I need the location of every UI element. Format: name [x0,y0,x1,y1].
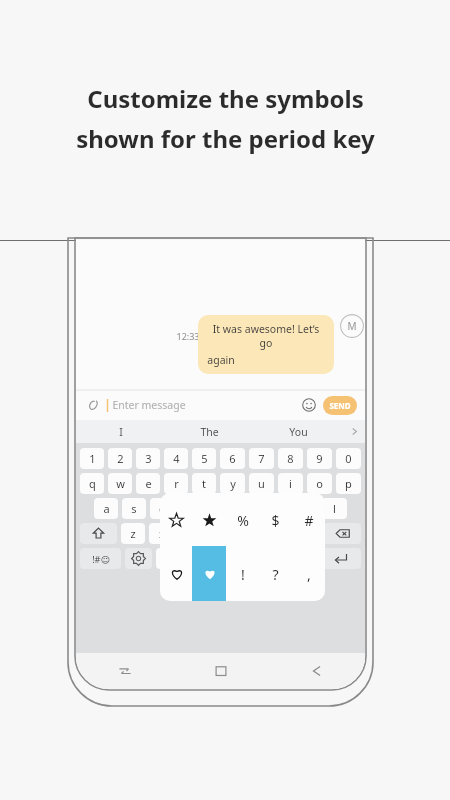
button[interactable]: You [254,420,343,443]
button[interactable]: p [336,473,361,494]
button[interactable] [193,547,226,601]
button[interactable]: Shift [80,523,117,544]
button[interactable]: m [294,523,319,544]
button[interactable]: 7 [249,448,274,469]
button[interactable]: Home [173,653,269,689]
staticText: The [200,425,219,439]
button[interactable]: s [122,498,146,519]
button[interactable]: r [164,473,188,494]
button[interactable]: 4 [164,448,188,469]
button[interactable]: ! [226,547,259,601]
button[interactable]: Recents [76,653,173,689]
button[interactable]: e [136,473,160,494]
button[interactable]: 9 [307,448,332,469]
staticText: 4 [173,451,180,466]
button[interactable]: 0 [336,448,361,469]
button[interactable]: b [236,523,261,544]
button[interactable]: a [94,498,118,519]
staticText: 12:33 [176,330,200,342]
staticText: 5 [201,451,208,466]
button[interactable]: c [178,523,203,544]
button[interactable]: i [278,473,303,494]
button[interactable]: Backspace [323,523,361,544]
button[interactable]: Back [269,653,365,689]
staticText: Enter message [112,398,186,412]
button[interactable]: x [149,523,174,544]
staticText: ! [241,565,245,584]
button[interactable]: I [76,420,165,443]
button[interactable]: Emoji [300,396,318,414]
staticText: ? [272,565,279,584]
button[interactable]: 8 [278,448,303,469]
button[interactable]: 6 [220,448,245,469]
button[interactable]: Enter message [112,390,300,420]
button[interactable]: g [206,498,231,519]
button[interactable]: !#☺ [80,548,121,569]
button[interactable]: Enter [320,548,361,569]
button[interactable]: d [150,498,174,519]
button[interactable]: # [292,493,325,547]
button[interactable]: ◂ English(US) ▸ [156,548,285,569]
button[interactable]: % [226,493,259,547]
button[interactable] [193,493,226,547]
staticText: % [237,511,249,530]
staticText: l [333,501,336,516]
button[interactable]: 5 [192,448,216,469]
button[interactable]: w [108,473,132,494]
staticText: d [159,501,166,516]
staticText: shown for the period key [76,122,375,155]
staticText: 2 [117,451,124,466]
button[interactable]: ? [259,547,292,601]
button[interactable]: n [265,523,290,544]
button[interactable]: u [249,473,274,494]
staticText: q [89,476,96,491]
staticText: p [345,476,352,491]
button[interactable]: o [307,473,332,494]
button[interactable]: j [264,498,289,519]
staticText: 7 [258,451,265,466]
button[interactable]: y [220,473,245,494]
button[interactable] [160,547,193,601]
button[interactable]: Contact M [340,314,364,338]
staticText: $ [271,511,280,530]
button[interactable]: The [165,420,254,443]
staticText: 1 [89,451,96,466]
button[interactable]: 3 [136,448,160,469]
button[interactable]: q [80,473,104,494]
staticText: You [289,425,308,439]
staticText: z [130,526,136,541]
button[interactable]: k [293,498,318,519]
button[interactable]: v [207,523,232,544]
button[interactable]: z [121,523,145,544]
button[interactable] [160,493,193,547]
staticText: t [202,476,206,491]
button[interactable]: , [292,547,325,601]
staticText: e [145,476,152,491]
button[interactable]: Settings [125,548,152,569]
button[interactable]: It was awesome! Let‘s go [198,315,334,374]
staticText: !#☺ [92,553,110,565]
button[interactable]: f [178,498,202,519]
staticText: i [289,476,292,491]
staticText: o [316,476,323,491]
button[interactable]: h [235,498,260,519]
button[interactable]: Attach [84,396,102,414]
button[interactable]: More suggestions [343,420,365,443]
button[interactable]: t [192,473,216,494]
button[interactable]: l [322,498,347,519]
staticText: Customize the symbols [87,82,364,115]
button[interactable]: $ [259,493,292,547]
button[interactable]: 1 [80,448,104,469]
button[interactable]: 2 [108,448,132,469]
button[interactable]: SEND [323,396,357,415]
